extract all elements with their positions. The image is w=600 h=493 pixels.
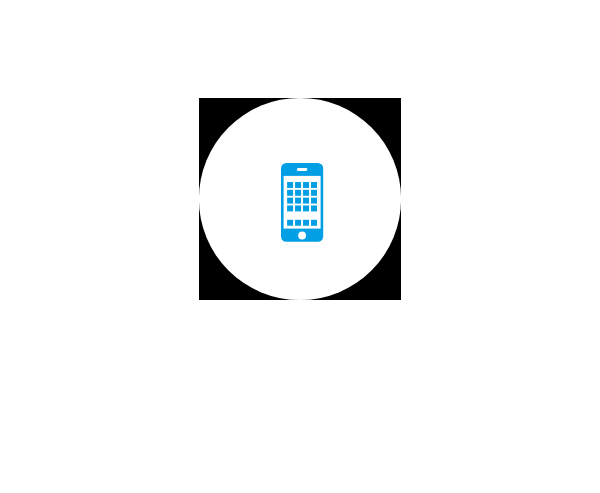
- button[interactable]: Mobile app: [199, 98, 401, 300]
